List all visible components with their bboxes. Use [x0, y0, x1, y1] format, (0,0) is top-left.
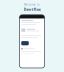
staticText: Welcome to: [24, 3, 40, 6]
staticText: Dentflex: [23, 6, 40, 12]
